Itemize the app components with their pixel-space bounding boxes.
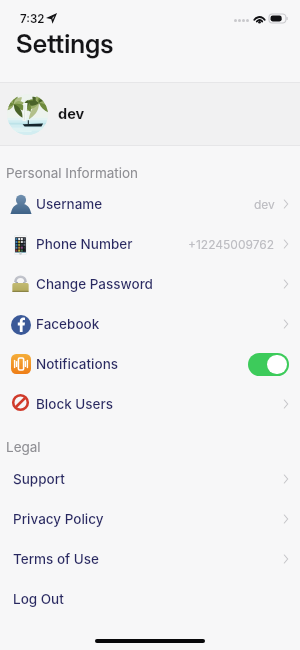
button[interactable]: Notifications (0, 344, 300, 384)
button[interactable]: Terms of Use (0, 539, 300, 579)
staticText: dev (254, 197, 275, 212)
staticText: Phone Number (36, 236, 133, 252)
staticText: Username (36, 196, 103, 212)
staticText: 7:32 (20, 12, 45, 26)
button[interactable]: Notifications toggle (248, 353, 289, 376)
staticText: Block Users (36, 396, 114, 412)
button[interactable]: Privacy Policy (0, 499, 300, 539)
button[interactable]: Support (0, 459, 300, 499)
button[interactable]: Username (0, 184, 300, 224)
staticText: Personal Information (6, 165, 139, 181)
button[interactable]: Change Password (0, 264, 300, 304)
staticText: Log Out (13, 591, 64, 607)
staticText: Support (13, 471, 65, 487)
button[interactable]: Facebook (0, 304, 300, 344)
staticText: Legal (6, 439, 41, 455)
staticText: Settings (16, 28, 114, 59)
button[interactable]: dev (0, 83, 300, 145)
staticText: Change Password (36, 276, 153, 292)
staticText: Notifications (36, 356, 119, 372)
staticText: +12245009762 (188, 237, 275, 252)
button[interactable]: Log Out (0, 579, 300, 619)
staticText: Privacy Policy (13, 511, 104, 527)
staticText: dev (58, 105, 85, 123)
staticText: Facebook (36, 316, 100, 332)
staticText: Terms of Use (13, 551, 100, 567)
button[interactable]: Block Users (0, 384, 300, 424)
button[interactable]: Phone Number (0, 224, 300, 264)
